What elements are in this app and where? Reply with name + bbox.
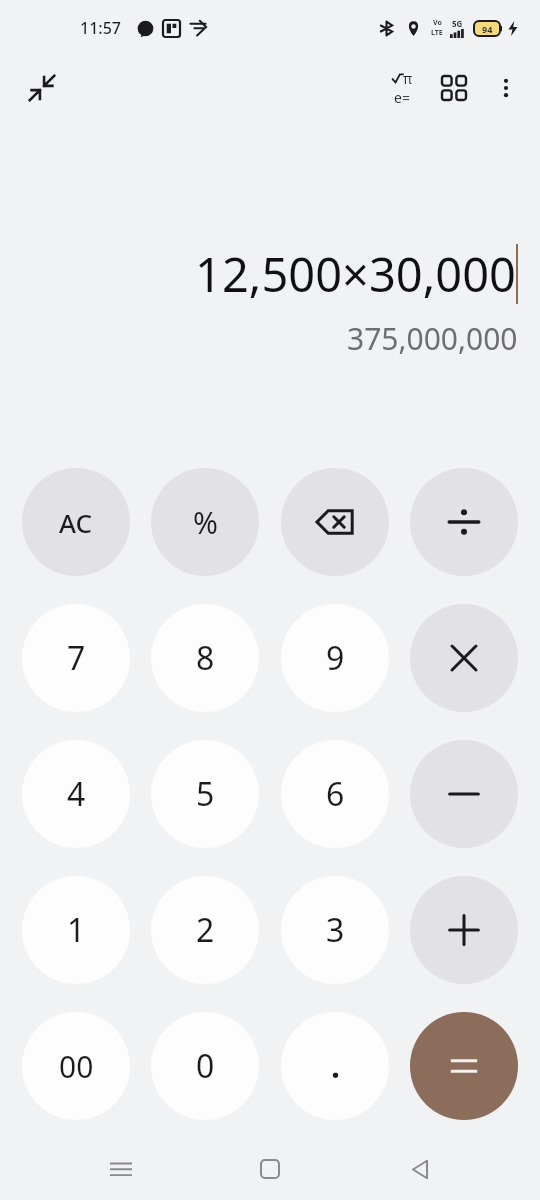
button[interactable]: 4 [22, 740, 130, 848]
button[interactable]: 0 [151, 1012, 259, 1120]
button[interactable]: 00 [22, 1012, 130, 1120]
button[interactable]: Scientific mode [376, 62, 428, 114]
staticText: = [402, 88, 411, 107]
button[interactable]: 2 [151, 876, 259, 984]
staticText: 5 [196, 772, 215, 816]
staticText: 8 [196, 636, 215, 680]
staticText: 0 [196, 1044, 215, 1088]
staticText: . [331, 1044, 340, 1088]
button[interactable]: Multiply [410, 604, 518, 712]
button[interactable]: . [281, 1012, 389, 1120]
staticText: 00 [59, 1046, 94, 1087]
button[interactable]: Collapse [16, 62, 68, 114]
staticText: 1 [67, 908, 86, 952]
button[interactable]: Recents [92, 1140, 150, 1198]
button[interactable]: % [151, 468, 259, 576]
staticText: LTE [431, 28, 443, 38]
staticText: 94 [482, 23, 493, 35]
staticText: 4 [67, 772, 86, 816]
staticText: % [193, 502, 218, 543]
button[interactable]: More options [480, 62, 532, 114]
staticText: 375,000,000 [347, 318, 518, 359]
button[interactable]: Minus [410, 740, 518, 848]
button[interactable]: 1 [22, 876, 130, 984]
button[interactable]: 7 [22, 604, 130, 712]
staticText: 5G [452, 18, 463, 29]
button[interactable]: 9 [281, 604, 389, 712]
button[interactable]: Plus [410, 876, 518, 984]
staticText: π [403, 69, 413, 88]
button[interactable]: Back [391, 1140, 449, 1198]
staticText: 12,500×30,000 [195, 242, 516, 306]
button[interactable]: 3 [281, 876, 389, 984]
staticText: 7 [67, 636, 86, 680]
button[interactable]: 8 [151, 604, 259, 712]
button[interactable]: Keypad layout [428, 62, 480, 114]
staticText: 9 [326, 636, 345, 680]
button[interactable]: 6 [281, 740, 389, 848]
staticText: 3 [326, 908, 345, 952]
staticText: 11:57 [80, 17, 121, 39]
staticText: AC [59, 505, 93, 540]
button[interactable]: 5 [151, 740, 259, 848]
button[interactable]: Backspace [281, 468, 389, 576]
staticText: 6 [326, 772, 345, 816]
button[interactable]: AC [22, 468, 130, 576]
button[interactable]: Divide [410, 468, 518, 576]
staticText: Vo [433, 18, 442, 28]
staticText: 2 [196, 908, 215, 952]
button[interactable]: Equals [410, 1012, 518, 1120]
button[interactable]: Home [241, 1140, 299, 1198]
staticText: e [394, 88, 402, 107]
